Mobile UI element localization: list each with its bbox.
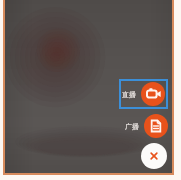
staticText: 直播 [122, 90, 136, 99]
button[interactable]: 直播 [122, 82, 165, 106]
staticText: 广播 [125, 122, 139, 131]
button[interactable]: 广播 [125, 114, 168, 138]
button[interactable]: 关闭 [141, 143, 167, 169]
